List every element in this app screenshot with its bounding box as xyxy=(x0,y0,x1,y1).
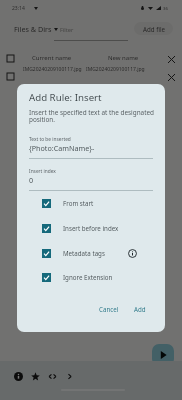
button[interactable]: Next xyxy=(61,366,78,386)
button[interactable]: Add file xyxy=(134,22,173,35)
button[interactable]: From start xyxy=(17,193,165,213)
button[interactable]: Favorites xyxy=(27,366,44,386)
button[interactable]: Clear xyxy=(168,56,175,63)
staticText: Insert before index xyxy=(63,224,119,232)
button[interactable]: Insert before index xyxy=(17,218,165,238)
staticText: Add Rule: Insert xyxy=(29,91,102,104)
button[interactable]: Add xyxy=(131,302,149,316)
button[interactable]: Remove xyxy=(168,74,175,81)
staticText: Ignore Extension xyxy=(63,273,113,281)
staticText: 36 xyxy=(163,5,168,11)
button[interactable]: Code xyxy=(44,366,61,386)
staticText: Cancel xyxy=(99,305,119,313)
staticText: From start xyxy=(63,199,94,207)
button[interactable]: Info xyxy=(10,366,27,386)
staticText: New name xyxy=(108,54,139,62)
staticText: Add file xyxy=(143,25,165,33)
staticText: Add xyxy=(134,305,146,313)
staticText: Text to be inserted xyxy=(29,136,71,143)
button[interactable]: Ignore Extension xyxy=(17,267,165,287)
staticText: 0 xyxy=(29,175,34,185)
button[interactable]: Info xyxy=(128,249,137,258)
staticText: Files & Dirs xyxy=(14,24,52,34)
button[interactable]: Select xyxy=(7,55,14,62)
staticText: IMG20240209100117.jpg xyxy=(86,66,145,73)
button[interactable]: Metadata tags xyxy=(17,243,165,263)
staticText: {Photo:CamName}- xyxy=(29,143,95,153)
staticText: IMG20240209100117.jpg xyxy=(23,66,82,73)
button[interactable]: Select xyxy=(7,73,14,80)
staticText: Insert index xyxy=(29,168,56,175)
staticText: Metadata tags xyxy=(63,249,105,257)
staticText: Filter xyxy=(60,26,74,34)
staticText: Insert the specified text at the designa… xyxy=(29,108,156,124)
button[interactable]: Run rules xyxy=(152,344,174,366)
button[interactable]: Files & Dirs xyxy=(14,23,58,35)
staticText: 23:14 xyxy=(12,5,25,12)
staticText: Current name xyxy=(32,54,72,62)
button[interactable]: Cancel xyxy=(96,302,122,316)
